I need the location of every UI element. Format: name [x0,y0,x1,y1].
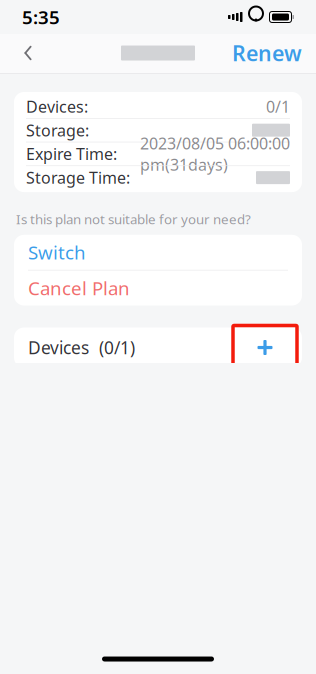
button[interactable]: Add device [234,327,296,367]
staticText: Renew [232,39,302,67]
button[interactable]: Cancel Plan [14,270,302,305]
staticText: Cancel Plan [28,276,130,300]
staticText: Devices: [26,96,88,117]
button[interactable]: Switch [14,235,302,270]
staticText: Storage: [26,120,89,141]
staticText: Storage Time: [26,167,130,188]
button[interactable]: Renew [226,33,308,73]
staticText: Is this plan not suitable for your need? [16,210,251,228]
staticText: 0/1 [266,96,290,117]
button[interactable]: Back [8,33,48,73]
staticText: 2023/08/05 06:00:00 pm(31days) [140,133,290,175]
staticText: 5:35 [22,5,60,29]
staticText: Expire Time: [26,143,117,164]
staticText: Switch [28,240,86,265]
staticText: Devices (0/1) [28,336,135,359]
